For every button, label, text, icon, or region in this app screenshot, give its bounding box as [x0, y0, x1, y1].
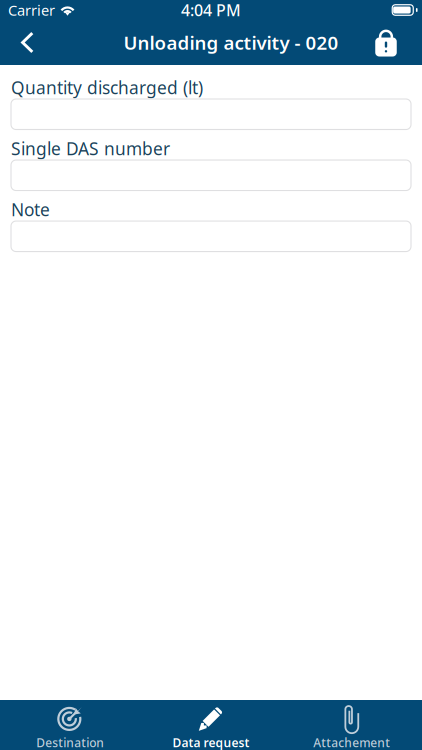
staticText: 4:04 PM — [181, 0, 241, 21]
staticText: Attachement — [313, 734, 390, 750]
staticText: Carrier — [8, 0, 55, 20]
button[interactable]: Note — [11, 221, 411, 252]
staticText: Data request — [172, 734, 249, 750]
button[interactable]: Destination — [0, 700, 141, 750]
button[interactable]: Quantity discharged (lt) — [11, 99, 411, 129]
staticText: Unloading activity - 020 — [123, 30, 338, 55]
button[interactable]: Attachement — [281, 700, 422, 750]
staticText: Single DAS number — [11, 137, 170, 160]
staticText: Quantity discharged (lt) — [11, 76, 203, 99]
staticText: Destination — [36, 734, 104, 750]
button[interactable]: Data request — [141, 700, 281, 750]
button[interactable]: Locked — [364, 20, 408, 65]
button[interactable]: Back — [7, 20, 47, 64]
button[interactable]: Single DAS number — [11, 160, 411, 190]
staticText: Note — [11, 198, 50, 221]
